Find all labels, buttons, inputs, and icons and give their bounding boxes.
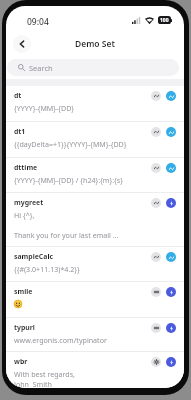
button[interactable]: Snippet options <box>151 357 161 367</box>
button[interactable]: wbr <box>6 352 184 388</box>
button[interactable]: mygreet <box>6 193 184 246</box>
button[interactable]: Snippet options <box>151 91 161 101</box>
button[interactable]: Expand snippet <box>166 323 176 333</box>
staticText: wbr <box>14 357 28 366</box>
button[interactable]: sampleCalc <box>6 247 184 281</box>
staticText: {{#(3.0+11.13)*4.2}} <box>14 264 80 274</box>
staticText: {YYYY}-{MM}-{DD} / {h24}:{m}:{s} <box>14 175 123 185</box>
staticText: John Smith <box>14 379 52 388</box>
staticText: With best regards, <box>14 369 75 379</box>
button[interactable]: Expand snippet <box>166 127 176 137</box>
staticText: {YYYY}-{MM}-{DD} <box>14 103 75 113</box>
staticText: 100 <box>160 17 169 24</box>
button[interactable]: Snippet options <box>151 163 161 173</box>
button[interactable]: Snippet options <box>151 287 161 297</box>
button[interactable]: Expand snippet <box>166 163 176 173</box>
staticText: typurl <box>14 323 35 332</box>
button[interactable]: Expand snippet <box>166 287 176 297</box>
button[interactable]: Expand snippet <box>166 91 176 101</box>
staticText: dt <box>14 91 22 100</box>
staticText: Demo Set <box>75 38 115 50</box>
button[interactable]: dt <box>6 86 184 121</box>
button[interactable]: Snippet options <box>151 252 161 262</box>
staticText: sampleCalc <box>14 252 53 261</box>
staticText: www.ergonis.com/typinator <box>14 335 107 345</box>
staticText: mygreet <box>14 198 44 207</box>
button[interactable]: Expand snippet <box>166 198 176 208</box>
staticText: dttime <box>14 163 38 172</box>
staticText: Thank you for your last email ... <box>14 230 119 240</box>
button[interactable]: Back <box>13 35 31 53</box>
staticText: smile <box>14 287 33 296</box>
staticText: Hi {^}, <box>14 210 35 220</box>
button[interactable]: dt1 <box>6 122 184 157</box>
button[interactable]: typurl <box>6 318 184 351</box>
button[interactable]: Search <box>7 59 179 76</box>
button[interactable]: Snippet options <box>151 127 161 137</box>
button[interactable]: Expand snippet <box>166 252 176 262</box>
staticText: Search <box>29 63 53 73</box>
button[interactable]: Expand snippet <box>166 357 176 367</box>
button[interactable]: dttime <box>6 158 184 192</box>
button[interactable]: Snippet options <box>151 198 161 208</box>
staticText: 09:04 <box>27 16 49 28</box>
staticText: {{dayDelta=+1}}{YYYY}-{MM}-{DD} <box>14 139 127 149</box>
button[interactable]: smile <box>6 282 184 317</box>
staticText: dt1 <box>14 127 26 136</box>
button[interactable]: Snippet options <box>151 323 161 333</box>
